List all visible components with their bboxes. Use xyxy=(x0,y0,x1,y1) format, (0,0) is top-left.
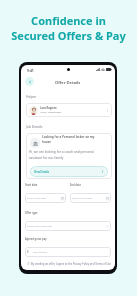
staticText: 9:41 xyxy=(27,68,34,73)
button[interactable]: $ xyxy=(25,247,111,257)
button[interactable]: Select an end date xyxy=(70,193,111,203)
staticText: Select an end date xyxy=(72,197,92,200)
button[interactable]: Please select offer type xyxy=(25,221,111,231)
button[interactable]: View Details xyxy=(30,166,108,177)
staticText: Looking for a Personal locker on my hous… xyxy=(42,135,95,144)
staticText: Offer type xyxy=(25,211,38,215)
staticText: Type amount xyxy=(33,251,48,254)
staticText: Luca Ragione xyxy=(40,106,57,110)
staticText: Helper xyxy=(26,94,37,98)
button[interactable]: Luca Ragione xyxy=(26,103,112,117)
staticText: End date xyxy=(70,183,81,187)
staticText: Offer Details xyxy=(55,80,81,86)
staticText: Secured Offers & Pay xyxy=(11,28,126,43)
staticText: View Details xyxy=(34,170,50,174)
staticText: By sending an offer, I agree to the Priv… xyxy=(31,262,112,266)
staticText: Agreed gross pay xyxy=(25,237,47,241)
button[interactable]: Looking for a Personal locker on my hous… xyxy=(26,133,112,179)
staticText: Start date xyxy=(25,183,38,187)
staticText: Job Details xyxy=(26,124,43,128)
button[interactable]: Back xyxy=(25,77,34,86)
staticText: Nanny, Housekeeper xyxy=(40,111,62,114)
button[interactable]: Select a start date xyxy=(25,193,66,203)
staticText: Please select offer type xyxy=(27,225,52,228)
staticText: Select a start date xyxy=(27,197,47,200)
staticText: $ xyxy=(27,250,29,254)
staticText: Confidence in xyxy=(31,13,106,28)
staticText: Hi, we are looking for a coach and perso… xyxy=(29,150,94,160)
